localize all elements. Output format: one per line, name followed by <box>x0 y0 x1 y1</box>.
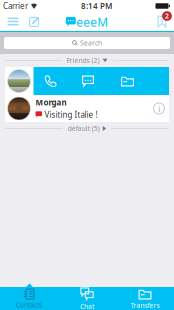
staticText: i <box>158 102 160 115</box>
button[interactable]: Morgan <box>5 95 169 122</box>
staticText: Contacts <box>16 301 42 309</box>
staticText: default (5) <box>68 124 100 133</box>
button[interactable]: Chat <box>58 287 116 310</box>
button[interactable]: Friends (2) <box>0 54 174 67</box>
button[interactable]: Menu <box>2 12 24 31</box>
staticText: Transfers <box>130 301 159 310</box>
staticText: eeeM <box>76 14 108 30</box>
staticText: Morgan <box>35 97 66 108</box>
button[interactable]: Transfers <box>116 287 174 310</box>
button[interactable]: Send file <box>108 67 146 95</box>
button[interactable]: Contacts <box>0 287 58 310</box>
staticText: Chat <box>80 302 94 310</box>
staticText: Search <box>80 39 102 47</box>
button[interactable]: Bookmarks <box>152 12 172 31</box>
button[interactable]: Message <box>67 67 108 95</box>
button[interactable]: Call <box>33 67 67 95</box>
staticText: 2 <box>165 12 169 20</box>
staticText: 8:14 PM <box>81 1 112 11</box>
staticText: Visiting Italie ! <box>44 109 97 120</box>
button[interactable]: Compose <box>24 12 45 31</box>
staticText: Carrier <box>3 1 28 11</box>
staticText: Friends (2) <box>66 56 99 65</box>
button[interactable]: default (5) <box>0 122 174 135</box>
